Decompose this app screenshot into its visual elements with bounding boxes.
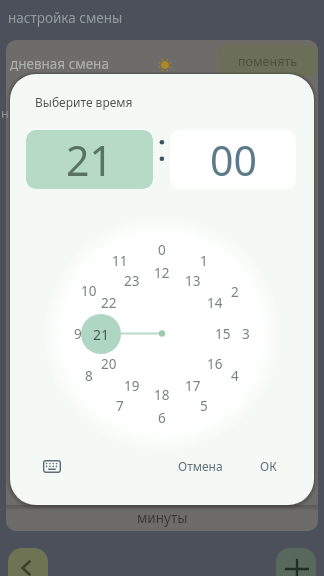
staticText: 21 bbox=[66, 132, 113, 188]
button[interactable]: ОК bbox=[250, 454, 286, 478]
staticText: дневная смена bbox=[10, 55, 109, 73]
staticText: ОК bbox=[260, 458, 277, 474]
staticText: 0 bbox=[158, 241, 166, 259]
staticText: 18 bbox=[154, 386, 170, 404]
staticText: 23 bbox=[124, 272, 140, 290]
staticText: 1 bbox=[200, 252, 208, 270]
staticText: 21 bbox=[93, 325, 110, 344]
staticText: н bbox=[1, 104, 9, 122]
staticText: Отмена bbox=[178, 458, 223, 474]
staticText: 12 bbox=[154, 264, 170, 282]
button[interactable] bbox=[36, 452, 68, 480]
staticText: 11 bbox=[112, 252, 128, 270]
button[interactable]: 21 bbox=[26, 130, 153, 189]
staticText: Выберите время bbox=[35, 94, 133, 110]
staticText: 19 bbox=[124, 377, 140, 395]
staticText: 3 bbox=[242, 325, 250, 343]
button[interactable]: поменять bbox=[218, 45, 318, 77]
staticText: минуты bbox=[137, 509, 188, 527]
staticText: 16 bbox=[207, 355, 223, 373]
staticText: 13 bbox=[185, 272, 201, 290]
staticText: 10 bbox=[81, 282, 97, 300]
button[interactable]: Отмена bbox=[170, 454, 230, 478]
button[interactable] bbox=[276, 548, 316, 576]
staticText: 6 bbox=[158, 409, 166, 427]
staticText: 9 bbox=[74, 325, 82, 343]
staticText: 15 bbox=[215, 325, 231, 343]
staticText: настройка смены bbox=[8, 9, 123, 27]
staticText: 5 bbox=[200, 397, 208, 415]
staticText: 8 bbox=[85, 367, 93, 385]
staticText: 00 bbox=[210, 132, 257, 188]
staticText: поменять bbox=[238, 53, 298, 70]
staticText: 7 bbox=[116, 397, 124, 415]
staticText: 2 bbox=[231, 283, 239, 301]
staticText: 22 bbox=[101, 294, 117, 312]
staticText: 17 bbox=[185, 377, 201, 395]
staticText: 4 bbox=[231, 367, 239, 385]
button[interactable]: 00 bbox=[170, 130, 296, 189]
staticText: 20 bbox=[101, 355, 117, 373]
button[interactable] bbox=[8, 548, 48, 576]
staticText: 14 bbox=[207, 294, 223, 312]
